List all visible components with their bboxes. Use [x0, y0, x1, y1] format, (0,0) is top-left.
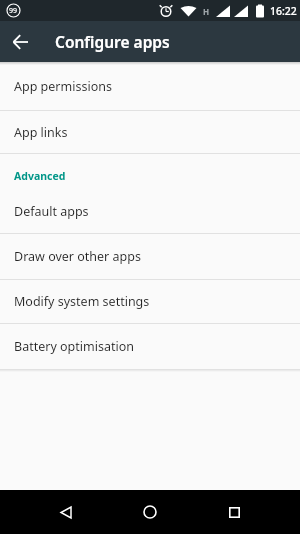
button[interactable]: Draw over other apps	[0, 234, 300, 279]
staticText: Draw over other apps	[14, 248, 141, 265]
staticText: H	[203, 6, 210, 17]
staticText: App permissions	[14, 78, 112, 95]
button[interactable]	[108, 490, 192, 534]
staticText: Default apps	[14, 203, 89, 220]
button[interactable]	[192, 490, 276, 534]
staticText: 16:22	[270, 4, 297, 18]
staticText: Advanced	[14, 169, 66, 183]
button[interactable]: Battery optimisation	[0, 324, 300, 369]
button[interactable]	[24, 490, 108, 534]
button[interactable]	[0, 21, 41, 62]
button[interactable]: App links	[0, 111, 300, 153]
button[interactable]: Default apps	[0, 189, 300, 233]
button[interactable]: Modify system settings	[0, 280, 300, 323]
staticText: Battery optimisation	[14, 338, 134, 355]
staticText: 99	[9, 6, 18, 16]
button[interactable]: App permissions	[0, 62, 300, 110]
staticText: Configure apps	[55, 31, 170, 52]
staticText: App links	[14, 124, 68, 141]
staticText: Modify system settings	[14, 293, 150, 310]
